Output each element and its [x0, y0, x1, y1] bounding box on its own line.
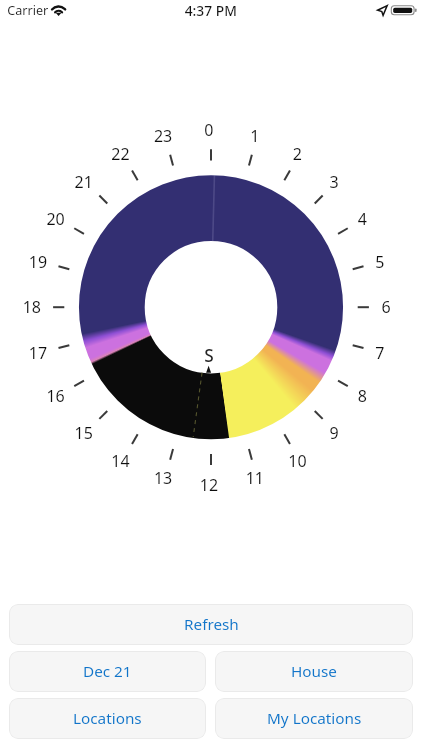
other: 24 hour sun path dial	[0, 0, 422, 750]
staticText: Locations	[73, 708, 142, 729]
staticText: Refresh	[184, 614, 239, 635]
staticText: Dec 21	[83, 661, 132, 682]
button[interactable]: House	[215, 651, 413, 692]
button[interactable]: Refresh	[9, 604, 413, 645]
button[interactable]: Locations	[9, 698, 206, 739]
staticText: My Locations	[267, 708, 362, 729]
staticText: House	[291, 661, 337, 682]
button[interactable]: Dec 21	[9, 651, 206, 692]
button[interactable]: My Locations	[215, 698, 413, 739]
